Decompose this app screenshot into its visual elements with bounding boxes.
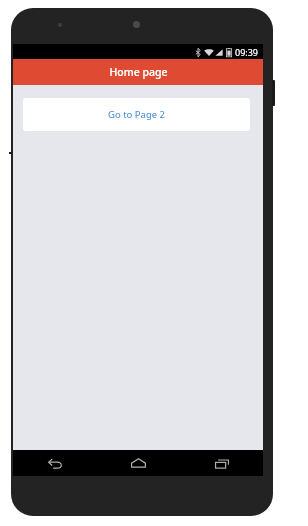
staticText: Home page — [109, 65, 168, 79]
staticText: 09:39 — [235, 46, 259, 58]
button[interactable]: Recent apps — [180, 450, 263, 476]
button[interactable]: Back — [13, 450, 97, 476]
button[interactable]: Home — [97, 450, 180, 476]
button[interactable]: Go to Page 2 — [23, 98, 250, 131]
staticText: Go to Page 2 — [108, 108, 165, 121]
